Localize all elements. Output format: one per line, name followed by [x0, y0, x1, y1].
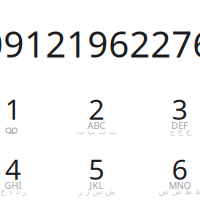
staticText: 3 — [172, 90, 188, 128]
staticText: JKL — [89, 179, 103, 192]
button[interactable]: 6 — [142, 154, 200, 200]
staticText: ر ذ د خ — [0, 187, 26, 196]
staticText: ح چ ج — [169, 127, 190, 136]
staticText: 4 — [5, 150, 21, 188]
staticText: 1 — [5, 90, 21, 128]
button[interactable]: 4 — [0, 154, 51, 200]
staticText: ش س ژ ز — [78, 187, 115, 196]
staticText: DEF — [171, 119, 188, 132]
staticText: 5 — [88, 150, 104, 188]
button[interactable]: 2 — [58, 94, 134, 148]
button[interactable]: Dialled number 09121962276 — [0, 26, 200, 60]
staticText: MNO — [169, 179, 191, 192]
button[interactable]: 3 — [142, 94, 200, 148]
staticText: 6 — [172, 150, 188, 188]
staticText: ظ ط ض ص — [158, 187, 200, 196]
button[interactable]: 5 — [58, 154, 134, 200]
staticText: ABC — [87, 119, 105, 132]
button[interactable]: 1 — [0, 94, 51, 148]
staticText: ث ت پ ب — [76, 127, 117, 136]
staticText: GHI — [4, 179, 21, 192]
staticText: 2 — [88, 90, 104, 128]
staticText: 09121962276 — [0, 20, 200, 67]
